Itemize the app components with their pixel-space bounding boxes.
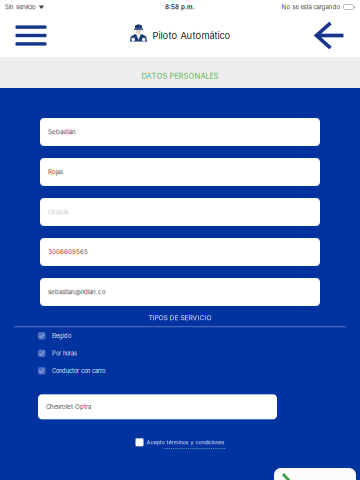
button[interactable]: Confirmar [274,468,356,480]
staticText: 3006609565 [48,248,88,256]
staticText: Elegido [52,332,71,339]
button[interactable]: Elegido [38,330,322,341]
staticText: 8:58 p.m. [165,3,195,11]
button[interactable]: Back [298,14,360,56]
button[interactable]: Acepto términos y condiciones [135,438,224,446]
staticText: Rojas [48,168,63,176]
staticText: Sin servicio [5,3,36,11]
button[interactable]: sebastian@ridian.co [40,278,320,306]
staticText: Cédula [48,208,68,216]
button[interactable]: Por horas [38,348,322,359]
button[interactable]: 3006609565 [40,238,320,266]
staticText: No se está cargando [282,3,341,11]
staticText: Chevrolet Optra [46,403,91,410]
staticText: Sebastián [48,128,76,136]
button[interactable]: Cédula [40,198,320,226]
button[interactable]: Menu [0,14,62,56]
staticText: Conductor con carro [52,367,105,374]
button[interactable]: Conductor con carro [38,365,322,376]
staticText: DATOS PERSONALES [141,71,218,80]
button[interactable]: Rojas [40,158,320,186]
staticText: Acepto términos y condiciones [146,439,224,446]
staticText: TIPOS DE SERVICIO [148,314,211,322]
staticText: Piloto Automático [152,30,230,41]
button[interactable]: Sebastián [40,118,320,146]
button[interactable]: Chevrolet Optra [38,394,277,419]
staticText: sebastian@ridian.co [48,288,106,296]
staticText: Por horas [52,350,77,357]
